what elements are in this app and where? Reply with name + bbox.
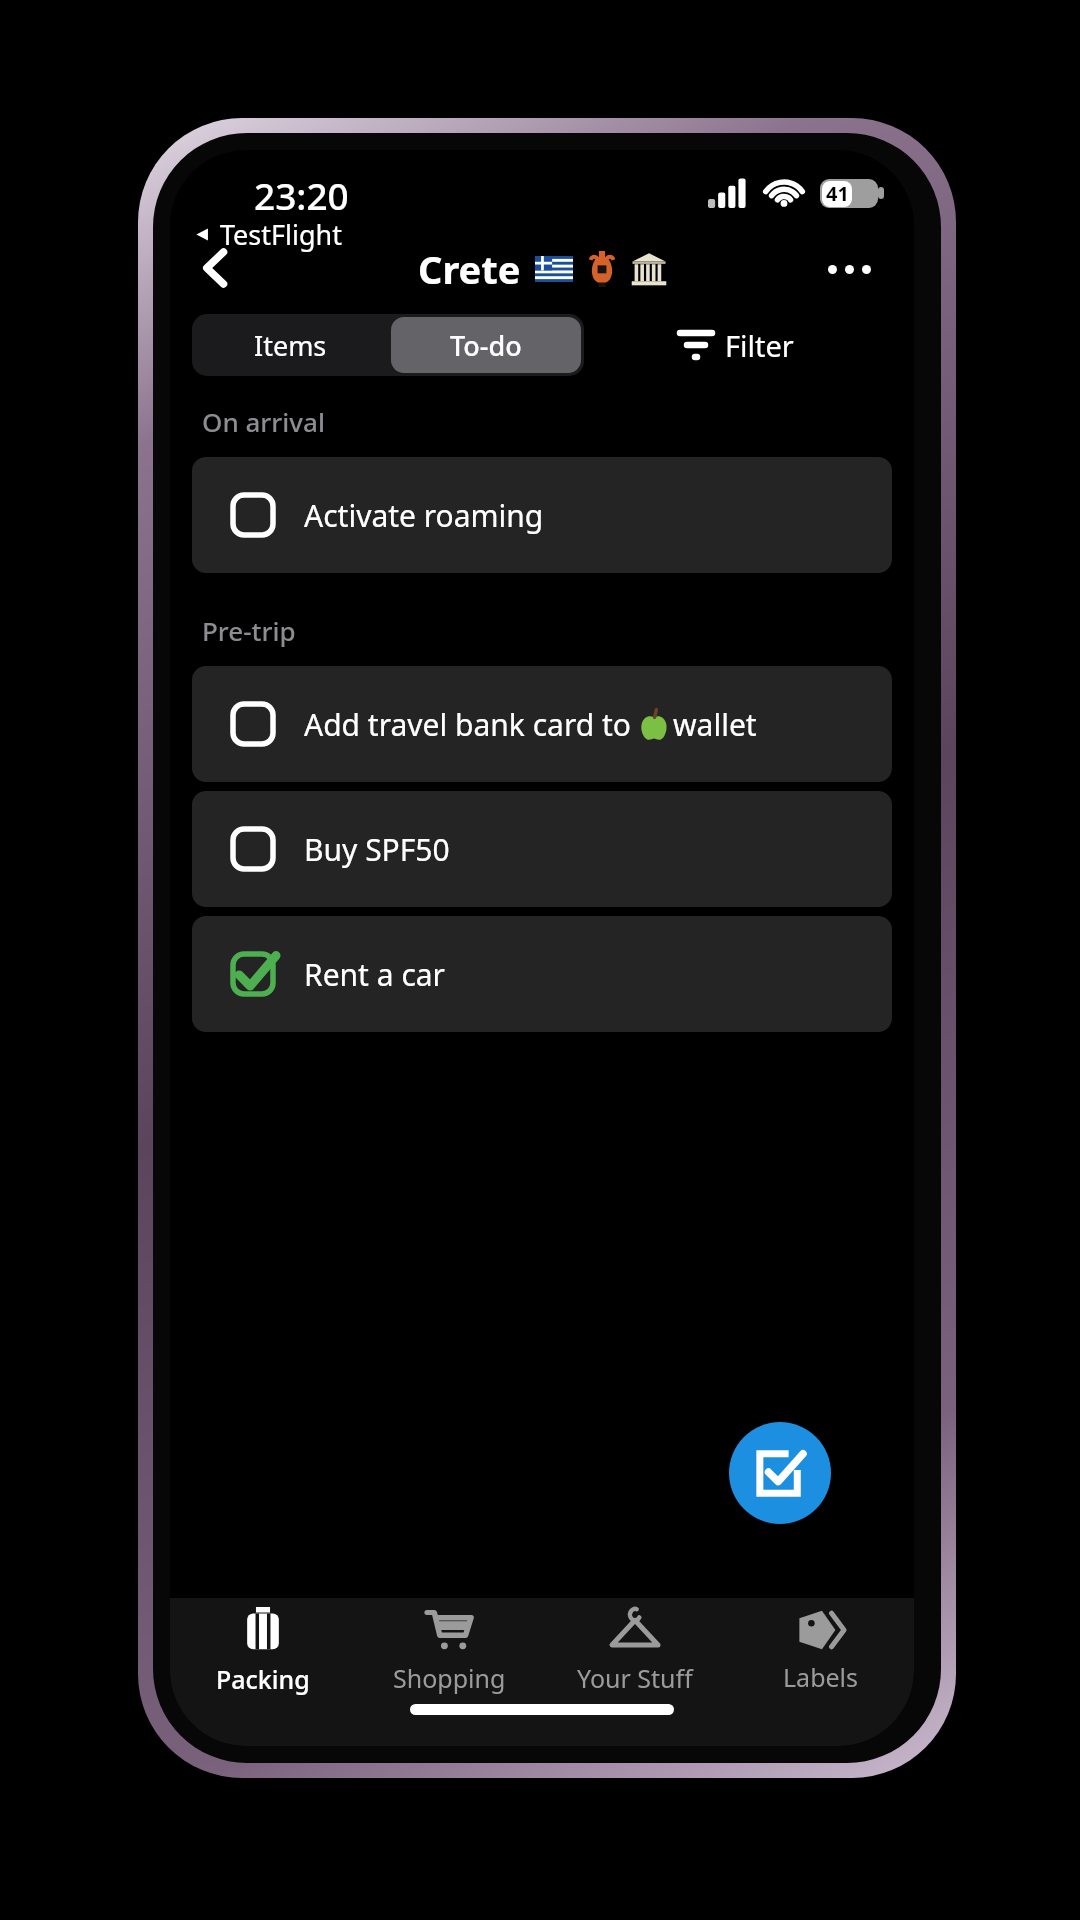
button[interactable]: Shopping <box>356 1598 542 1704</box>
button[interactable]: Labels <box>728 1598 914 1704</box>
staticText: To-do <box>450 327 522 364</box>
staticText: Filter <box>725 326 794 365</box>
staticText: wallet <box>673 704 757 745</box>
button[interactable]: Your Stuff <box>542 1598 728 1704</box>
button[interactable]: Rent a car <box>192 916 892 1032</box>
staticText: Pre-trip <box>202 613 296 648</box>
staticText: Rent a car <box>304 954 445 995</box>
staticText: Crete <box>418 243 521 295</box>
button[interactable]: Buy SPF50 <box>192 791 892 907</box>
staticText: TestFlight <box>220 216 343 253</box>
button[interactable]: Items <box>192 314 388 376</box>
button[interactable]: Add travel bank card to <box>192 666 892 782</box>
staticText: 23:20 <box>254 170 349 220</box>
button[interactable]: Filter <box>666 314 806 376</box>
staticText: Add travel bank card to <box>304 704 639 745</box>
button[interactable]: Activate roaming <box>192 457 892 573</box>
staticText: Labels <box>783 1660 859 1694</box>
button[interactable]: Packing <box>170 1598 356 1704</box>
staticText: Your Stuff <box>577 1661 693 1695</box>
staticText: Packing <box>216 1662 310 1696</box>
staticText: On arrival <box>202 404 325 439</box>
staticText: Activate roaming <box>304 495 544 536</box>
staticText: Shopping <box>393 1661 506 1695</box>
button[interactable]: More options <box>810 230 888 308</box>
button[interactable]: Add to-do <box>729 1422 831 1524</box>
button[interactable]: Back <box>176 228 256 308</box>
staticText: Buy SPF50 <box>304 829 450 870</box>
button[interactable]: To-do <box>391 317 581 373</box>
staticText: 41 <box>826 180 849 207</box>
staticText: Items <box>254 327 327 364</box>
